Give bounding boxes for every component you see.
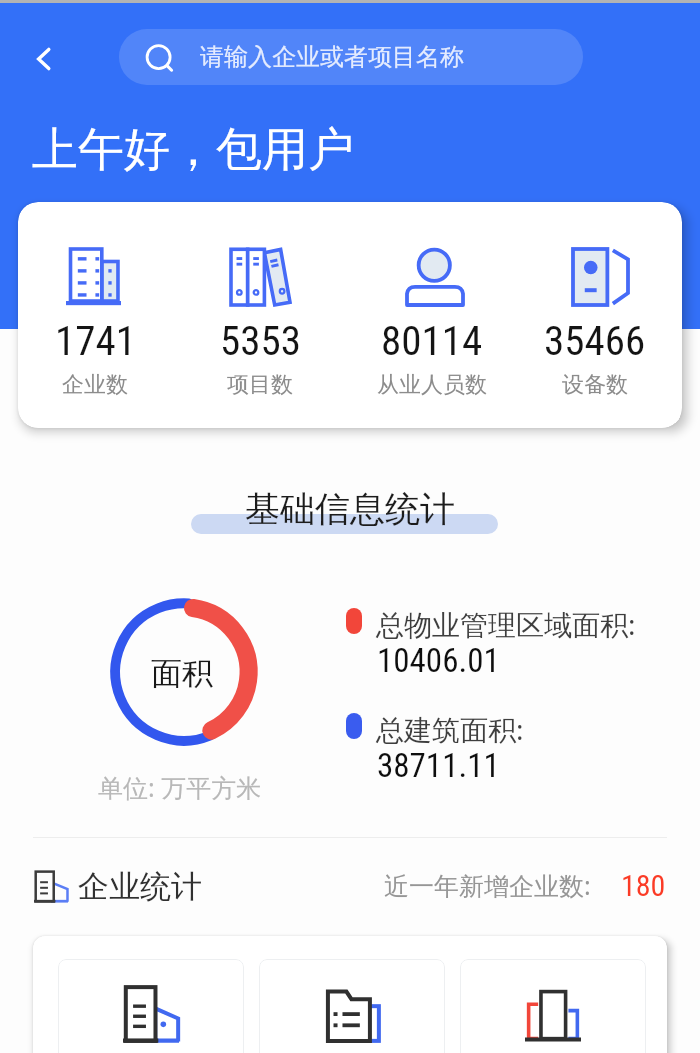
staticText: 80114 [381,317,483,365]
staticText: 总物业管理区域面积: [376,605,636,643]
button[interactable]: Stat category 1 [58,959,244,1053]
button[interactable]: 企业统计 [34,866,202,906]
staticText: 近一年新增企业数: [384,868,591,902]
staticText: 180 [621,868,666,902]
staticText: 35466 [544,317,646,365]
button[interactable]: Back [18,33,70,85]
staticText: 1741 [55,317,136,365]
button[interactable]: 35466 [530,249,660,331]
button[interactable]: 5353 [195,249,325,331]
staticText: 总建筑面积: [376,710,524,748]
button[interactable]: Stat category 3 [460,959,646,1053]
staticText: 从业人员数 [377,371,487,399]
staticText: 单位: 万平方米 [98,770,262,804]
button[interactable]: Stat category 2 [259,959,445,1053]
staticText: 38711.11 [377,746,500,785]
staticText: 10406.01 [377,641,500,680]
button[interactable]: 80114 [367,249,497,331]
staticText: 企业统计 [78,867,202,906]
staticText: 项目数 [227,371,293,399]
staticText: 基础信息统计 [245,487,455,531]
button[interactable]: 1741 [30,249,160,331]
staticText: 设备数 [562,371,628,399]
button[interactable]: Area chart [110,598,258,746]
button[interactable]: 请输入企业或者项目名称 [119,29,583,85]
staticText: 面积 [151,654,213,693]
staticText: 请输入企业或者项目名称 [200,42,464,72]
staticText: 企业数 [62,371,128,399]
staticText: 5353 [220,317,301,365]
staticText: 上午好，包用户 [32,121,354,179]
